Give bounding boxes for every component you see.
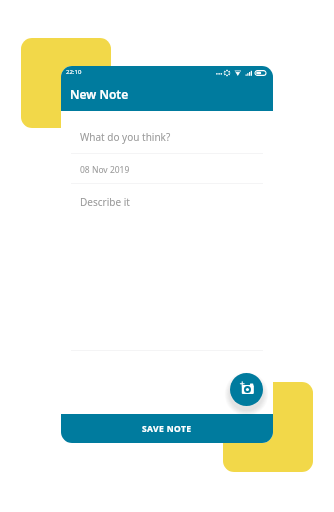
button[interactable]: 08 Nov 2019 [71,154,263,183]
staticText: SAVE NOTE [142,423,192,435]
button[interactable]: Describe it [71,184,263,350]
staticText: 22:10 [66,68,82,76]
staticText: Describe it [80,195,130,209]
staticText: What do you think? [80,130,171,144]
staticText: 08 Nov 2019 [80,164,130,176]
staticText: New Note [70,86,129,102]
button[interactable]: What do you think? [71,119,263,153]
button[interactable]: Add photo [230,373,263,406]
button[interactable]: SAVE NOTE [61,414,273,443]
